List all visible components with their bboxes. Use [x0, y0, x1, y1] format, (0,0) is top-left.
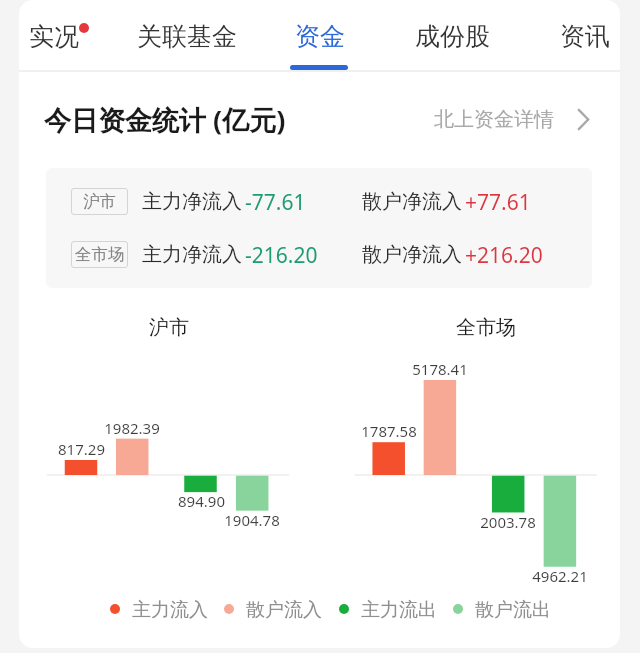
staticText: 散户流出: [475, 598, 551, 620]
staticText: -216.20: [245, 241, 318, 268]
staticText: 主力流入: [132, 598, 208, 620]
button[interactable]: 散户流入: [224, 598, 322, 620]
staticText: 实况: [29, 21, 79, 52]
staticText: 散户流入: [246, 598, 322, 620]
staticText: 全市场: [456, 315, 516, 340]
staticText: 北上资金详情: [434, 107, 554, 132]
staticText: 沪市: [149, 315, 189, 340]
staticText: 成份股: [415, 21, 490, 52]
staticText: 散户净流入: [362, 242, 462, 267]
staticText: 关联基金: [137, 21, 237, 52]
button[interactable]: 主力流出: [339, 598, 437, 620]
staticText: +216.20: [465, 241, 543, 268]
button[interactable]: 实况: [19, 10, 93, 62]
staticText: 5178.41: [412, 359, 468, 379]
staticText: +77.61: [465, 188, 531, 215]
staticText: 1982.39: [104, 418, 160, 438]
button[interactable]: 关联基金: [123, 10, 251, 62]
staticText: 全市场: [75, 244, 125, 265]
staticText: 2003.78: [480, 512, 536, 532]
button[interactable]: 北上资金详情: [434, 103, 589, 135]
staticText: 资讯: [560, 21, 610, 52]
button[interactable]: 散户流出: [453, 598, 551, 620]
staticText: 资金: [295, 21, 345, 52]
staticText: -77.61: [245, 188, 306, 215]
staticText: 今日资金统计 (亿元): [44, 101, 286, 138]
staticText: 1787.58: [361, 421, 417, 441]
staticText: 沪市: [83, 191, 116, 212]
button[interactable]: 资金: [281, 10, 359, 62]
staticText: 817.29: [58, 439, 105, 459]
staticText: 1904.78: [224, 510, 280, 530]
button[interactable]: 资讯: [546, 10, 620, 62]
button[interactable]: 成份股: [401, 10, 504, 62]
staticText: 894.90: [178, 491, 225, 511]
staticText: 主力净流入: [142, 242, 242, 267]
staticText: 4962.21: [532, 566, 588, 586]
staticText: 主力净流入: [142, 189, 242, 214]
staticText: 散户净流入: [362, 189, 462, 214]
button[interactable]: 主力流入: [110, 598, 208, 620]
staticText: 主力流出: [361, 598, 437, 620]
